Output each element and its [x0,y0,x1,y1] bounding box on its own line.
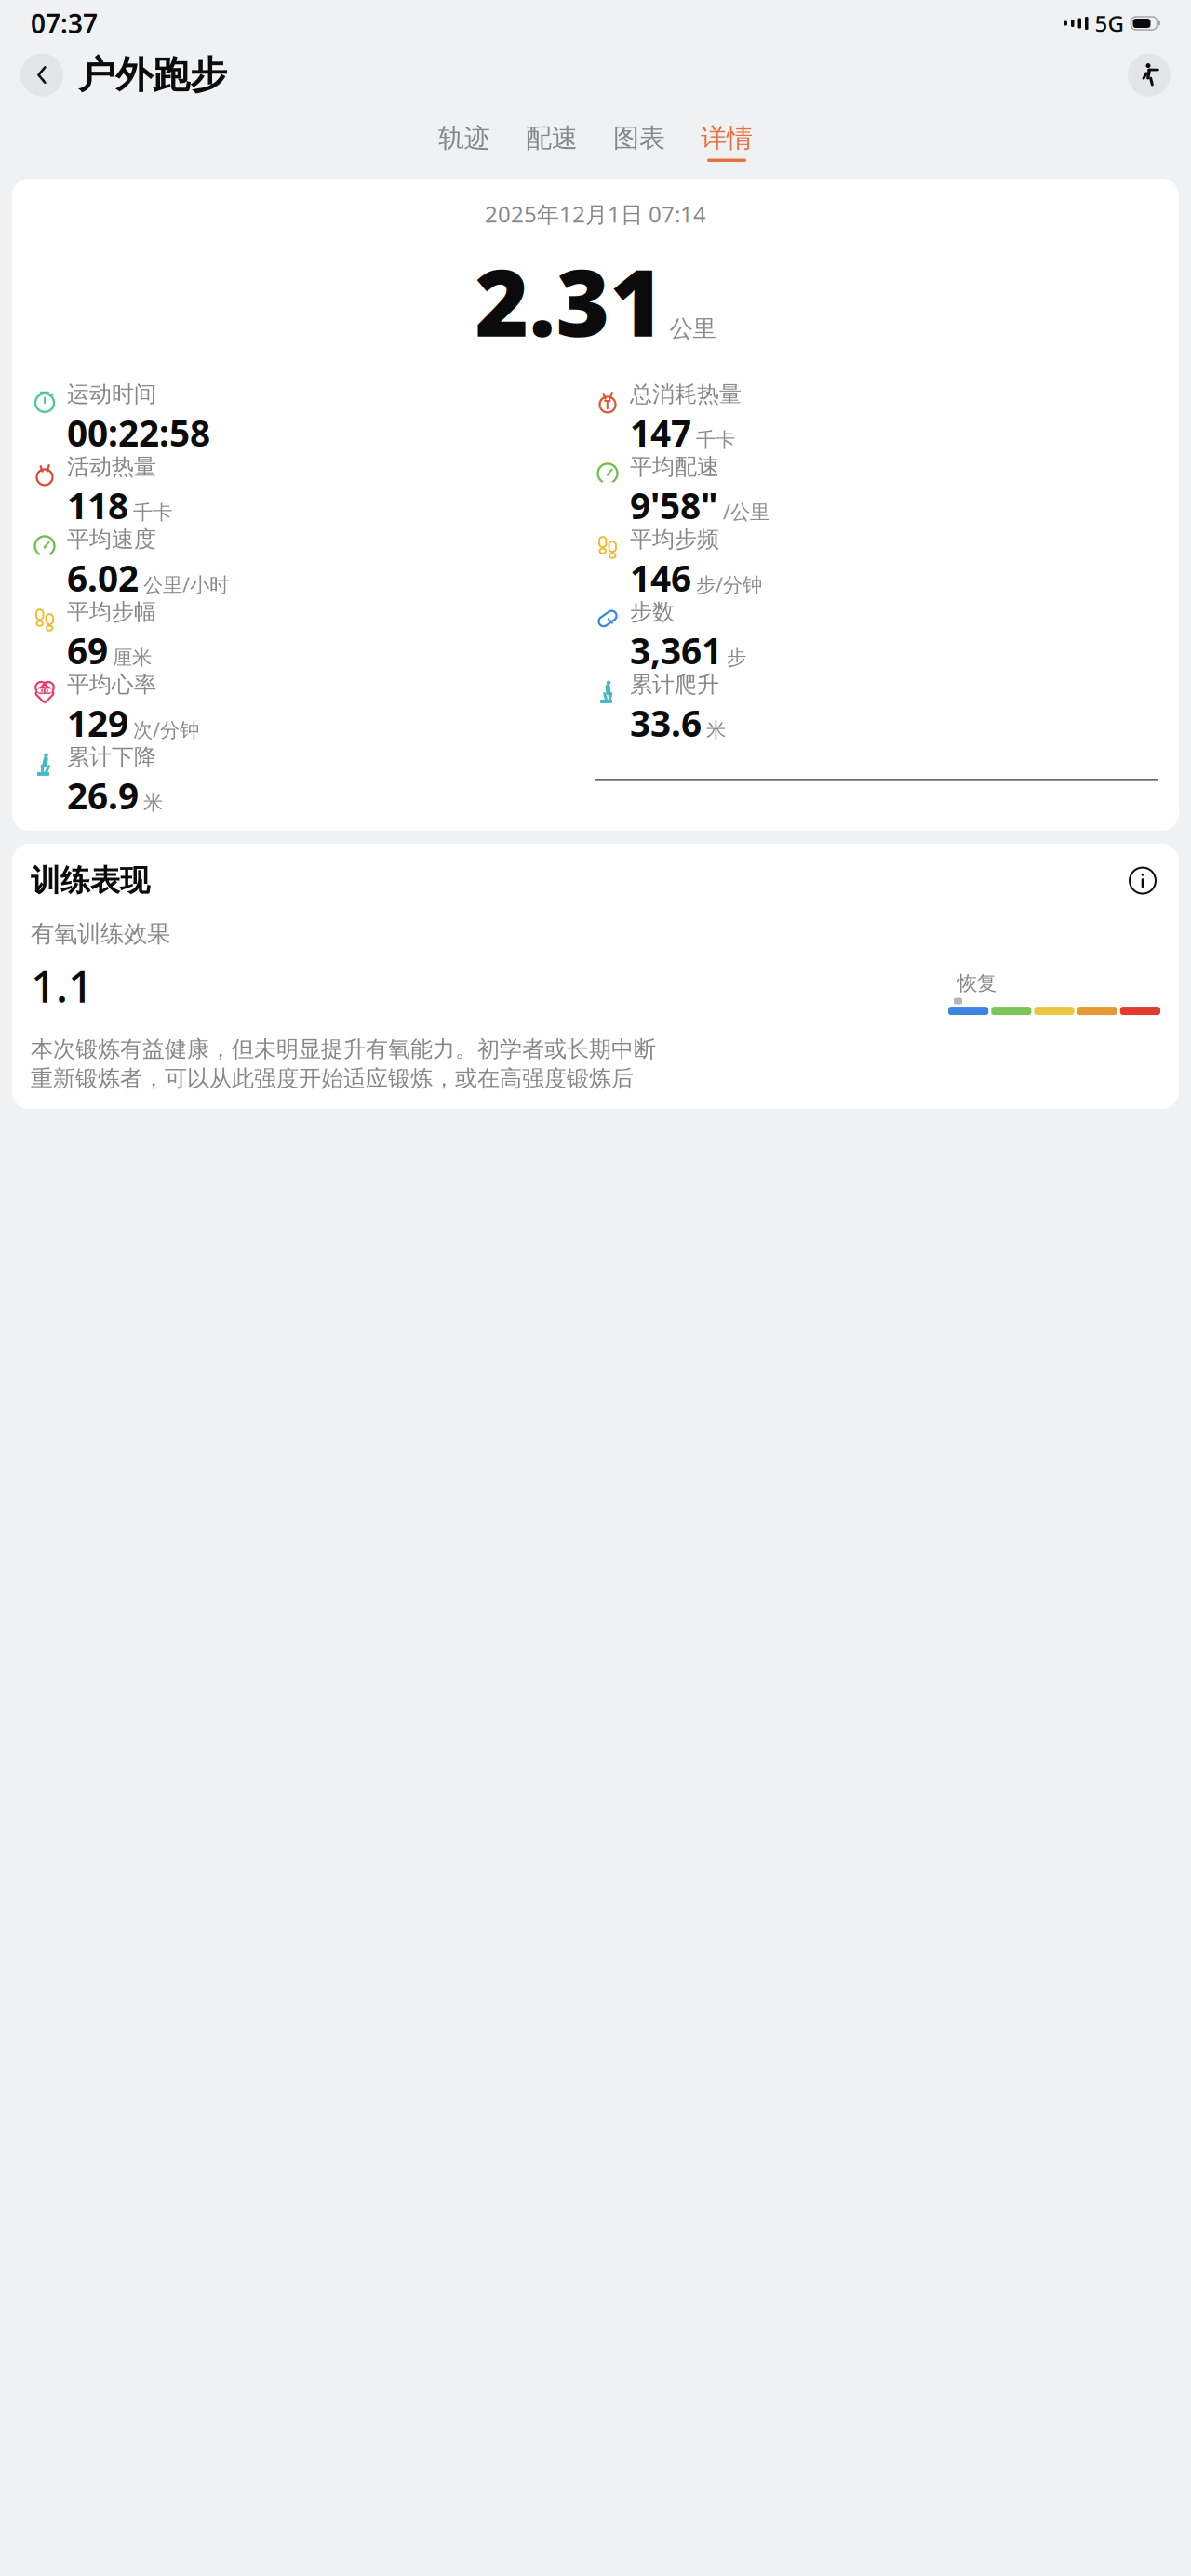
staticText: 步 [727,646,746,670]
staticText: 配速 [526,122,578,154]
staticText: 118 [67,481,128,529]
button[interactable]: 详情 [695,118,758,166]
staticText: 2.31 [475,240,664,362]
staticText: 累计爬升 [630,671,719,698]
staticText: 1.1 [31,956,93,1015]
staticText: 步数 [630,598,675,626]
staticText: 恢复 [957,971,997,996]
staticText: 3,361 [630,626,722,674]
staticText: 平均步频 [630,526,719,553]
staticText: 千卡 [696,428,735,452]
staticText: 147 [630,409,691,456]
staticText: 图表 [613,122,665,154]
staticText: 有氧训练效果 [31,919,170,948]
staticText: 厘米 [113,646,152,670]
staticText: 户外跑步 [78,52,227,98]
staticText: 平均步幅 [67,598,156,626]
staticText: 33.6 [630,699,702,747]
staticText: 26.9 [67,772,139,819]
button[interactable]: 运动类型 [1128,54,1171,96]
button[interactable]: 说明 [1125,863,1160,898]
staticText: 00:22:58 [67,409,210,456]
staticText: 次/分钟 [133,716,199,743]
staticText: 步/分钟 [696,571,762,597]
staticText: T [604,396,611,413]
staticText: 6.02 [67,554,139,602]
staticText: 公里/小时 [143,571,229,597]
staticText: 5G [1095,8,1124,38]
staticText: 公里 [669,314,716,343]
staticText: 129 [67,699,128,747]
button[interactable]: 配速 [520,118,583,166]
staticText: 146 [630,554,691,602]
staticText: 总消耗热量 [630,380,742,408]
staticText: 平均速度 [67,526,156,553]
staticText: 平均配速 [630,453,719,480]
staticText: 千卡 [133,500,172,525]
staticText: 重新锻炼者，可以从此强度开始适应锻炼，或在高强度锻炼后 [31,1065,634,1092]
staticText: 本次锻炼有益健康，但未明显提升有氧能力。初学者或长期中断 [31,1036,656,1063]
staticText: 米 [706,718,726,742]
staticText: 活动热量 [67,453,156,480]
staticText: 平均心率 [67,671,156,698]
button[interactable]: 图表 [608,118,671,166]
staticText: 运动时间 [67,380,156,408]
staticText: 详情 [701,122,753,154]
staticText: 69 [67,626,108,674]
staticText: 2025年12月1日 07:14 [485,199,706,229]
staticText: /公里 [723,498,769,525]
button[interactable]: 轨迹 [433,118,496,166]
staticText: 累计下降 [67,743,156,771]
staticText: 9'58" [630,481,718,529]
staticText: 训练表现 [31,862,150,899]
staticText: 轨迹 [438,122,490,154]
staticText: 米 [143,791,163,815]
button[interactable]: 返回 [20,54,63,96]
staticText: 07:37 [31,6,98,41]
